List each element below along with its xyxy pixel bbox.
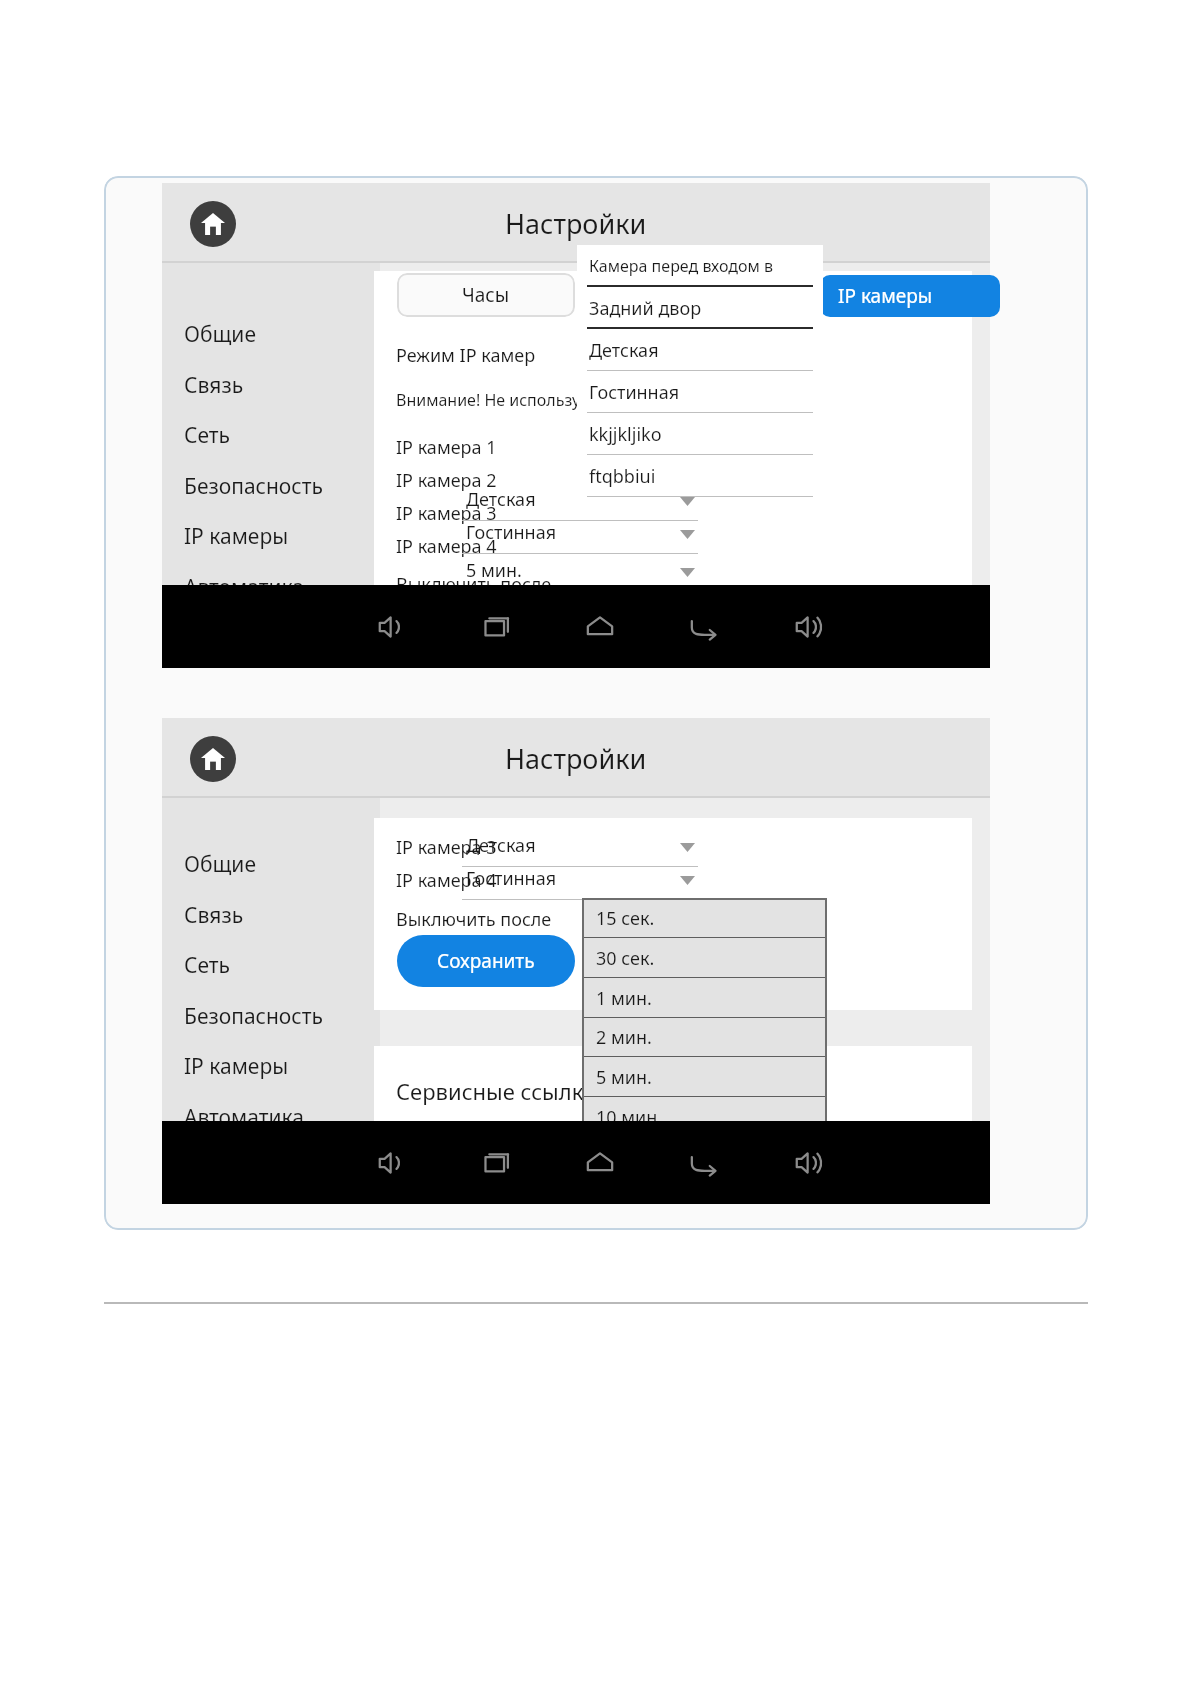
staticText: IP камеры [838,283,933,309]
staticText: IP камера 3 [396,501,497,526]
button[interactable]: Volume up [784,1141,830,1185]
button[interactable]: Back [681,605,727,649]
button[interactable]: 2 мин. [582,1017,827,1057]
staticText: Выключить после [396,907,552,932]
button[interactable]: Автоматика [162,566,380,608]
button[interactable]: Back [681,1141,727,1185]
button[interactable]: 15 сек. [582,898,827,938]
button[interactable]: 30 сек. [582,938,827,978]
staticText: IP камера 1 [396,435,497,460]
button[interactable]: 1 мин. [582,978,827,1018]
button[interactable]: 10 мин. [582,1097,827,1137]
button[interactable]: Камера перед входом в квартиру [577,245,823,287]
staticText: Гостинная [466,866,557,891]
staticText: 2 мин. [596,1025,652,1050]
button[interactable]: Общие [162,313,380,355]
staticText: Детская [589,338,659,363]
staticText: Автоматика [184,573,304,602]
button[interactable]: Сеть [162,944,380,986]
staticText: Детская [466,487,536,512]
staticText: 5 мин. [596,1065,652,1090]
staticText: IP камера 3 [396,835,497,860]
staticText: 15 сек. [596,906,655,931]
staticText: Связь [184,901,244,930]
button[interactable]: IP камеры [162,515,380,557]
staticText: 10 мин. [596,1105,663,1130]
button[interactable]: Volume down [367,605,413,649]
staticText: Камера перед входом в квартиру [589,255,823,277]
button[interactable]: Home [190,201,236,247]
staticText: Внимание! Не используйте д [396,389,621,411]
staticText: Безопасность [184,1002,323,1031]
button[interactable]: Сохранить [397,601,575,653]
button[interactable]: Расширенные [162,1146,380,1188]
staticText: Общие [184,320,256,349]
button[interactable]: kkjjkljiko [577,413,823,455]
button[interactable]: Гостинная [577,371,823,413]
staticText: Выключить после [396,572,552,597]
staticText: Страница по умолчанию [396,1148,589,1170]
button[interactable]: Задний двор [577,287,823,329]
button[interactable]: 5 мин. [582,1057,827,1097]
button[interactable]: Связь [162,894,380,936]
button[interactable]: Recent apps [474,605,520,649]
staticText: IP камера 4 [396,534,497,559]
button[interactable]: Безопасность [162,995,380,1037]
button[interactable] [589,273,767,317]
staticText: Сохранить [437,614,535,640]
staticText: Детская [466,833,536,858]
button[interactable]: Volume up [784,605,830,649]
staticText: Связь [184,371,244,400]
staticText: Введите сервисные ссылки [396,1118,608,1140]
staticText: Сохранить [437,948,535,974]
staticText: IP камеры [184,522,289,551]
button[interactable]: Автоматика [162,1096,380,1138]
button[interactable]: Безопасность [162,465,380,507]
staticText: kkjjkljiko [589,422,662,447]
staticText: Гостинная [589,380,680,405]
staticText: Сеть [184,421,231,450]
button[interactable]: Сеть [162,414,380,456]
staticText: Настройки [505,205,647,242]
button[interactable]: Home [190,736,236,782]
button[interactable]: Связь [162,364,380,406]
staticText: Режим IP камер [396,343,536,368]
button[interactable]: Recent apps [474,1141,520,1185]
button[interactable]: Сохранить [397,935,575,987]
staticText: Часы [462,282,510,308]
button[interactable]: Home [577,1141,623,1185]
staticText: Общие [184,850,256,879]
button[interactable]: Часы [397,273,575,317]
staticText: 30 сек. [596,946,655,971]
staticText: Безопасность [184,472,323,501]
staticText: Сервисные ссылки [396,1076,597,1106]
button[interactable]: Home [577,605,623,649]
staticText: IP камера 2 [396,468,497,493]
staticText: Гостинная [466,520,557,545]
button[interactable]: IP камеры [162,1045,380,1087]
button[interactable]: ftqbbiui [577,455,823,497]
button[interactable]: Volume down [367,1141,413,1185]
staticText: 5 мин. [466,558,522,583]
staticText: Автоматика [184,1103,304,1132]
staticText: Настройки [505,740,647,777]
staticText: 1 мин. [596,986,652,1011]
staticText: Задний двор [589,296,702,321]
staticText: Сеть [184,951,231,980]
button[interactable]: Детская [577,329,823,371]
button[interactable]: IP камеры [820,275,1000,317]
staticText: IP камеры [184,1052,289,1081]
button[interactable]: Расширенные [162,616,380,658]
button[interactable]: Общие [162,843,380,885]
staticText: ftqbbiui [589,464,656,489]
staticText: IP камера 4 [396,868,497,893]
